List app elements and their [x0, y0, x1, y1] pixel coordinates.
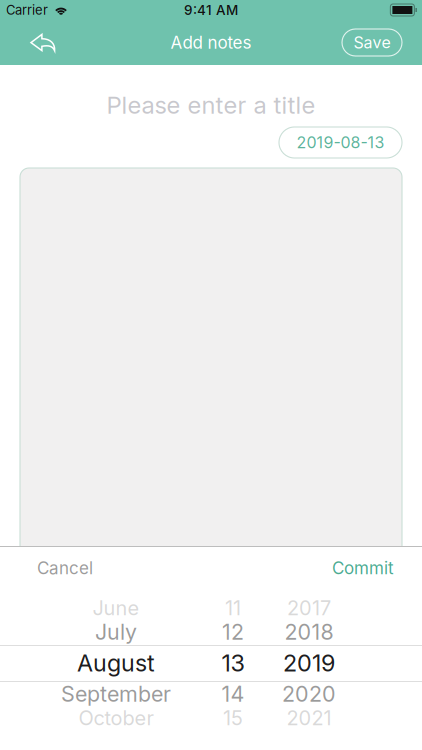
staticText: 2018: [284, 619, 333, 645]
staticText: Add notes: [170, 32, 251, 53]
staticText: Please enter a title: [106, 90, 315, 119]
button[interactable]: Cancel: [21, 547, 109, 589]
staticText: June: [92, 596, 139, 620]
staticText: 9:41 AM: [184, 2, 238, 18]
staticText: September: [61, 681, 171, 707]
staticText: July: [95, 619, 137, 645]
staticText: 2021: [286, 706, 331, 730]
button[interactable]: Save: [342, 29, 402, 56]
staticText: Carrier: [6, 2, 48, 18]
staticText: 2017: [287, 596, 331, 620]
button[interactable]: Back: [21, 22, 65, 62]
staticText: Cancel: [37, 558, 93, 578]
button[interactable]: 2019-08-13: [279, 127, 402, 158]
staticText: 2019: [283, 649, 335, 677]
staticText: Save: [353, 33, 390, 52]
button[interactable]: Commit: [316, 547, 410, 589]
staticText: 12: [222, 619, 244, 645]
staticText: 2019-08-13: [296, 133, 384, 152]
staticText: October: [78, 706, 153, 730]
staticText: 14: [221, 681, 244, 707]
staticText: 11: [225, 596, 241, 620]
staticText: 15: [223, 706, 243, 730]
staticText: August: [77, 649, 155, 677]
staticText: 2020: [282, 681, 336, 707]
staticText: Commit: [332, 558, 394, 578]
staticText: 13: [221, 649, 244, 677]
